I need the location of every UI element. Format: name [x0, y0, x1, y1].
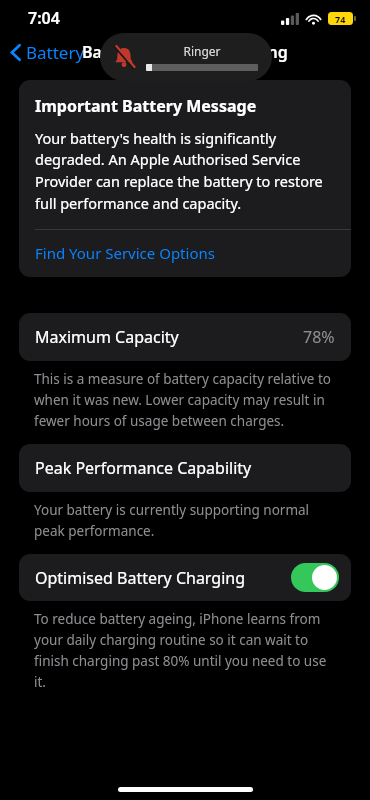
button[interactable]: Battery [0, 39, 91, 66]
staticText: Ringer [146, 43, 258, 59]
button[interactable]: Optimised Battery Charging [19, 554, 351, 601]
staticText: Important Battery Message [35, 95, 257, 117]
button[interactable]: Maximum Capacity [19, 313, 351, 361]
button[interactable]: Peak Performance Capability [19, 444, 351, 492]
staticText: To reduce battery ageing, iPhone learns … [34, 610, 341, 691]
staticText: Battery [26, 41, 85, 64]
staticText: Maximum Capacity [35, 326, 303, 348]
staticText: Your battery's health is significantly d… [35, 128, 335, 214]
staticText: 74 [335, 13, 346, 25]
button[interactable]: Find Your Service Options [19, 230, 351, 277]
staticText: 7:04 [28, 7, 60, 29]
staticText: This is a measure of battery capacity re… [34, 370, 341, 430]
staticText: Find Your Service Options [35, 243, 215, 263]
staticText: Your battery is currently supporting nor… [34, 501, 341, 540]
staticText: Optimised Battery Charging [35, 567, 291, 589]
staticText: Peak Performance Capability [35, 457, 335, 479]
staticText: Battery Health & Charging [82, 41, 288, 63]
staticText: 78% [303, 326, 335, 348]
button[interactable]: Optimised Battery Charging toggle [291, 563, 339, 592]
